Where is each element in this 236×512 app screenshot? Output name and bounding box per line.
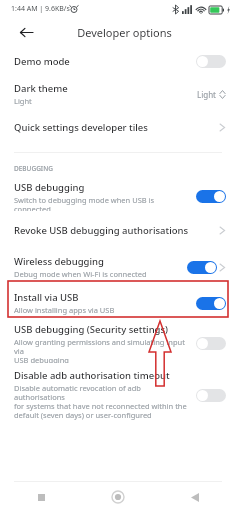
button[interactable]: Home <box>107 486 129 508</box>
staticText: Disable adb authorisation timeout <box>14 369 170 382</box>
staticText: Revoke USB debugging authorisations <box>14 224 189 237</box>
staticText: Disable automatic revocation of adb auth… <box>14 383 190 421</box>
staticText: Allow installing apps via USB <box>14 305 115 315</box>
staticText: Switch to debugging mode when USB is con… <box>14 195 190 211</box>
button[interactable]: USB debugging (Security settings) <box>0 323 236 363</box>
staticText: Dark theme <box>14 82 68 95</box>
button[interactable] <box>196 389 226 402</box>
button[interactable]: Dark theme <box>0 76 236 112</box>
button[interactable]: Revoke USB debugging authorisations <box>0 217 236 243</box>
button[interactable] <box>187 261 217 274</box>
button[interactable]: USB debugging <box>0 181 236 211</box>
button[interactable]: Back <box>14 20 38 44</box>
staticText: DEBUGGING <box>14 164 53 173</box>
staticText: Quick settings developer tiles <box>14 121 148 134</box>
button[interactable] <box>196 297 226 310</box>
staticText: USB debugging (Security settings) <box>14 323 169 336</box>
staticText: Allow granting permissions and simulatin… <box>14 337 190 363</box>
staticText: Debug mode when Wi-Fi is connected <box>14 269 147 279</box>
button[interactable]: Disable adb authorisation timeout <box>0 369 236 421</box>
staticText: Light <box>197 89 217 100</box>
staticText: Light <box>14 96 32 106</box>
button[interactable] <box>196 190 226 203</box>
button[interactable]: Wireless debugging <box>0 250 236 284</box>
staticText: Demo mode <box>14 55 70 68</box>
button[interactable]: Recents <box>30 486 52 508</box>
staticText: Developer options <box>77 25 172 40</box>
button[interactable]: Back <box>184 486 206 508</box>
button[interactable]: Install via USB <box>0 287 236 319</box>
button[interactable] <box>196 55 226 68</box>
button[interactable]: Quick settings developer tiles <box>0 112 236 142</box>
button[interactable]: Demo mode <box>0 46 236 76</box>
button[interactable] <box>196 337 226 350</box>
staticText: USB debugging <box>14 181 85 194</box>
staticText: 1:44 AM | 9.6KB/s <box>11 4 70 14</box>
staticText: Install via USB <box>14 291 79 304</box>
staticText: Wireless debugging <box>14 255 104 268</box>
